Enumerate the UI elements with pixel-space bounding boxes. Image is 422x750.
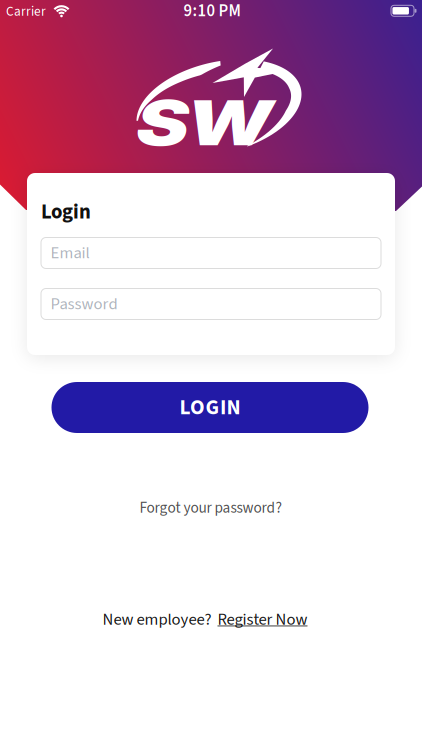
staticText: Password bbox=[50, 292, 117, 316]
button[interactable]: Forgot your password? bbox=[139, 497, 282, 519]
button[interactable]: Password bbox=[41, 288, 381, 319]
staticText: Carrier bbox=[6, 2, 46, 21]
staticText: LOGIN bbox=[179, 392, 240, 423]
staticText: Email bbox=[50, 241, 89, 265]
staticText: SW bbox=[152, 86, 256, 160]
staticText: Login bbox=[41, 197, 91, 227]
staticText: New employee? bbox=[102, 608, 211, 631]
staticText: Register Now bbox=[217, 608, 307, 631]
button[interactable]: LOGIN bbox=[51, 382, 368, 433]
staticText: Forgot your password? bbox=[139, 497, 282, 519]
button[interactable]: Email bbox=[41, 237, 381, 268]
button[interactable]: Register Now bbox=[217, 608, 307, 631]
staticText: 9:10 PM bbox=[183, 0, 240, 23]
